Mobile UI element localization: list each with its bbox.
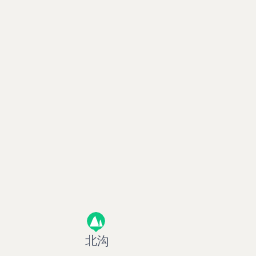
button[interactable]: 北沟: [70, 212, 121, 247]
staticText: 北沟: [85, 233, 109, 248]
